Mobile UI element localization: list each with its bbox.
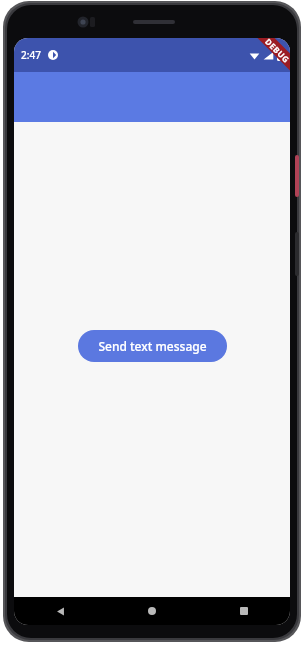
button[interactable]: Recent apps xyxy=(198,597,290,625)
staticText: 2:47 xyxy=(21,48,41,62)
button[interactable]: Send text message xyxy=(78,330,227,362)
button[interactable]: Back xyxy=(14,597,106,625)
staticText: Send text message xyxy=(98,338,207,354)
staticText: DEBUG xyxy=(263,38,290,65)
button[interactable]: Home xyxy=(106,597,198,625)
